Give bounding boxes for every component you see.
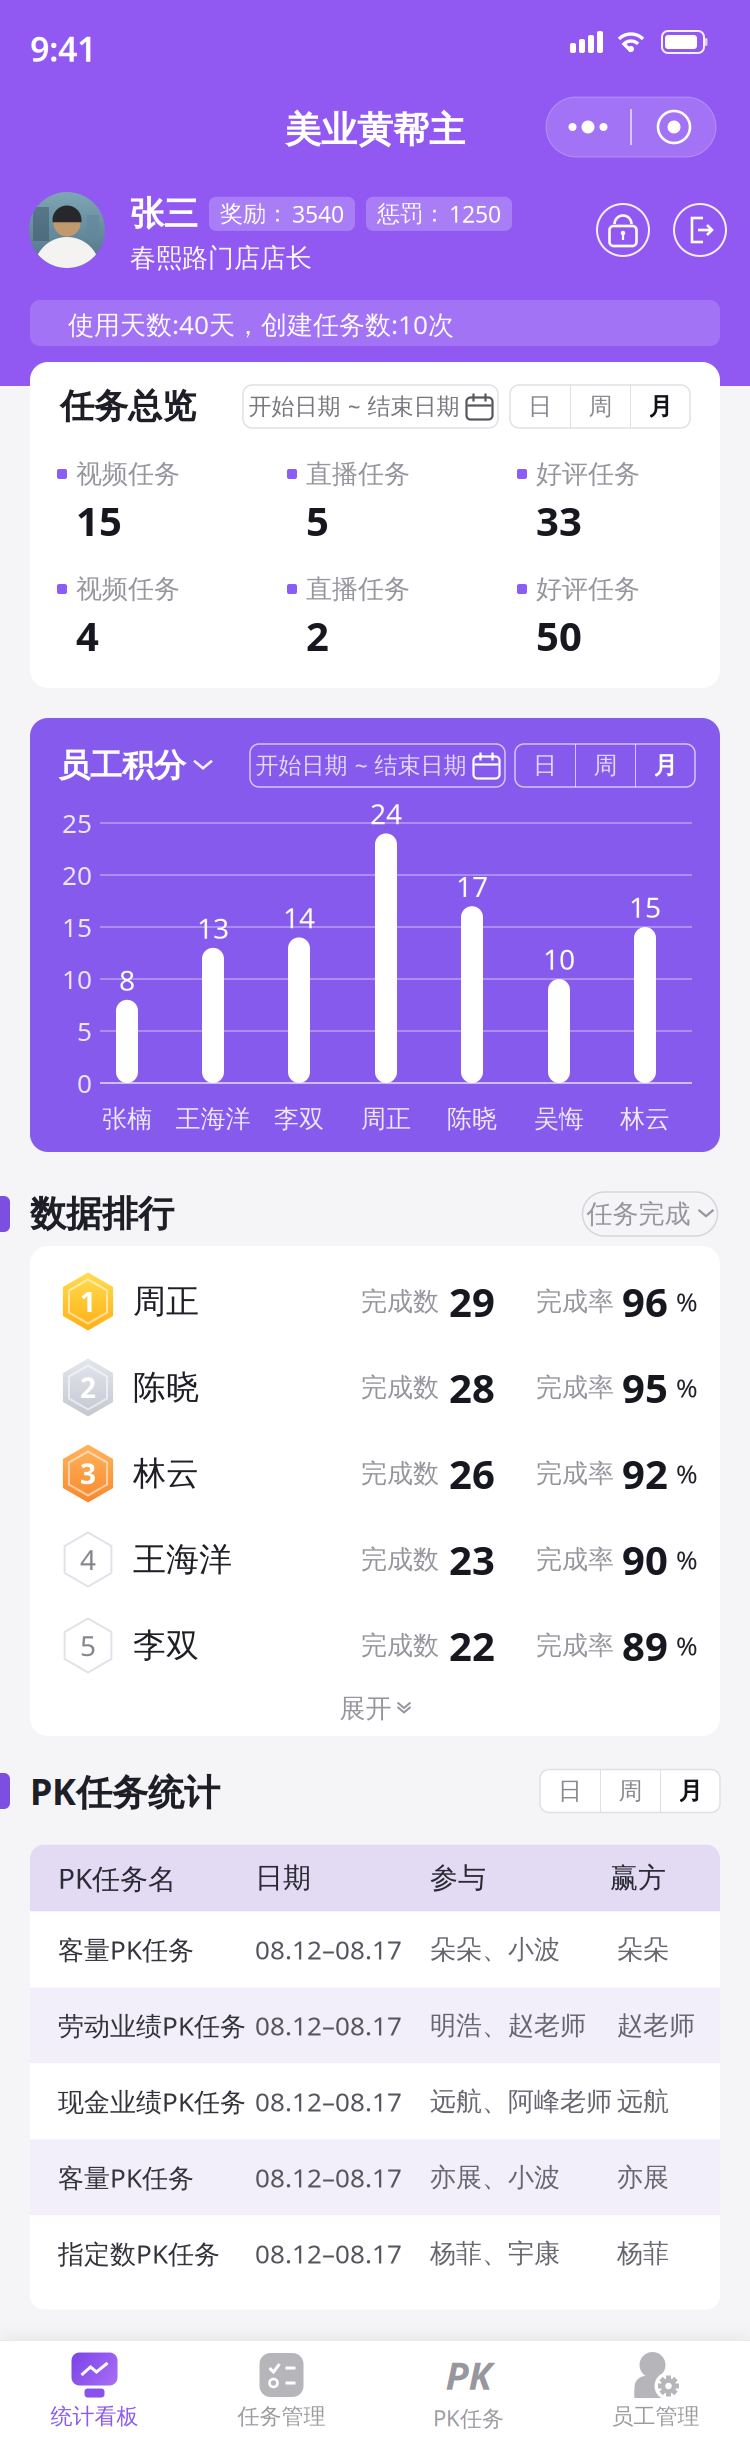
staticText: 4	[76, 609, 99, 662]
button[interactable]: 惩罚：	[366, 197, 512, 231]
staticText: 9:41	[30, 26, 96, 71]
staticText: 王海洋	[133, 1539, 232, 1580]
staticText: 92	[622, 1447, 668, 1500]
button[interactable]: 周	[601, 1769, 660, 1812]
staticText: 完成率	[536, 1285, 614, 1317]
staticText: 3540	[292, 199, 344, 229]
staticText: %	[676, 1628, 698, 1663]
staticText: 杨菲	[617, 2237, 669, 2269]
staticText: 明浩、赵老师	[430, 2009, 586, 2041]
staticText: 张三	[130, 193, 198, 235]
button[interactable]: 周	[571, 385, 630, 428]
staticText: 周正	[361, 1104, 411, 1134]
staticText: 29	[449, 1275, 495, 1328]
button[interactable]: 开始日期	[243, 385, 498, 428]
staticText: 2	[80, 1369, 96, 1406]
staticText: 26	[449, 1447, 495, 1500]
button[interactable]: 日	[540, 1769, 600, 1812]
staticText: ~	[347, 391, 360, 422]
staticText: 15	[76, 494, 122, 547]
staticText: 客量PK任务	[58, 1932, 194, 1967]
staticText: 客量PK任务	[58, 2160, 194, 2195]
button[interactable]: 任务完成	[582, 1192, 717, 1236]
button[interactable]: 日	[510, 385, 570, 428]
staticText: 王海洋	[175, 1104, 250, 1134]
button[interactable]: 周	[576, 744, 635, 787]
staticText: 完成率	[536, 1457, 614, 1489]
staticText: PK任务	[433, 2403, 504, 2432]
staticText: 完成数	[361, 1285, 439, 1317]
staticText: 劳动业绩PK任务	[58, 2008, 246, 2043]
staticText: ~	[354, 750, 367, 781]
staticText: 赢方	[610, 1861, 666, 1895]
staticText: 08.12–08.17	[255, 2160, 402, 2195]
staticText: 林云	[620, 1104, 670, 1134]
button[interactable]: 开始日期	[250, 744, 505, 787]
staticText: 89	[622, 1619, 668, 1672]
staticText: 员工积分	[58, 746, 186, 785]
staticText: 5	[80, 1627, 96, 1664]
button[interactable]: Lock	[597, 204, 649, 256]
staticText: 现金业绩PK任务	[58, 2084, 246, 2119]
staticText: 14	[283, 899, 315, 936]
staticText: 林云	[133, 1453, 199, 1494]
button[interactable]: 日	[515, 744, 575, 787]
button[interactable]: 使用天数:40天，创建任务数:10次	[30, 300, 720, 346]
button[interactable]: 员工积分	[58, 746, 212, 785]
staticText: 5	[77, 1014, 92, 1048]
button[interactable]: More	[546, 97, 630, 157]
button[interactable]: 员工管理	[562, 2340, 749, 2450]
staticText: 完成数	[361, 1457, 439, 1489]
staticText: 视频任务	[76, 458, 180, 490]
staticText: %	[676, 1542, 698, 1577]
staticText: 任务总览	[60, 386, 196, 427]
button[interactable]: 月	[661, 1769, 720, 1812]
staticText: 月	[648, 392, 672, 421]
staticText: 亦展、小波	[430, 2161, 560, 2193]
staticText: 直播任务	[306, 458, 410, 490]
staticText: 数据排行	[30, 1192, 174, 1236]
button[interactable]: Sign out	[674, 204, 726, 256]
staticText: 08.12–08.17	[255, 2084, 402, 2119]
staticText: 参与	[430, 1861, 486, 1895]
staticText: PK任务统计	[30, 1767, 220, 1815]
staticText: 完成率	[536, 1629, 614, 1661]
staticText: 周	[593, 751, 617, 780]
staticText: 完成数	[361, 1629, 439, 1661]
staticText: 员工管理	[611, 2403, 699, 2430]
button[interactable]: 月	[636, 744, 695, 787]
staticText: 08.12–08.17	[255, 2008, 402, 2043]
staticText: 15	[629, 888, 661, 926]
staticText: 50	[536, 609, 582, 662]
button[interactable]: 奖励：	[209, 197, 355, 231]
button[interactable]: PK	[375, 2340, 562, 2450]
staticText: 陈晓	[133, 1367, 199, 1408]
button[interactable]: 月	[631, 385, 690, 428]
staticText: 完成率	[536, 1371, 614, 1403]
button[interactable]: Close	[632, 97, 716, 157]
staticText: 展开	[339, 1692, 391, 1724]
staticText: 95	[622, 1361, 668, 1414]
staticText: 好评任务	[536, 573, 640, 605]
staticText: 23	[449, 1533, 495, 1586]
staticText: PK	[445, 2349, 491, 2401]
staticText: 亦展	[617, 2161, 669, 2193]
staticText: 4	[80, 1541, 96, 1578]
staticText: 25	[62, 806, 92, 840]
staticText: 远航	[617, 2085, 669, 2117]
staticText: 朵朵	[617, 1933, 669, 1965]
staticText: 2	[306, 609, 329, 662]
staticText: 1	[80, 1283, 96, 1320]
button[interactable]: 任务管理	[188, 2340, 375, 2450]
staticText: 完成率	[536, 1543, 614, 1575]
staticText: 惩罚：	[377, 200, 446, 228]
staticText: 日	[558, 1776, 582, 1806]
staticText: 08.12–08.17	[255, 1932, 402, 1967]
staticText: %	[676, 1456, 698, 1491]
button[interactable]: 统计看板	[1, 2340, 188, 2450]
staticText: 月	[653, 751, 677, 780]
staticText: 日	[533, 751, 557, 780]
staticText: 吴悔	[534, 1104, 584, 1134]
button[interactable]: 展开	[339, 1688, 410, 1728]
staticText: 24	[370, 795, 402, 832]
